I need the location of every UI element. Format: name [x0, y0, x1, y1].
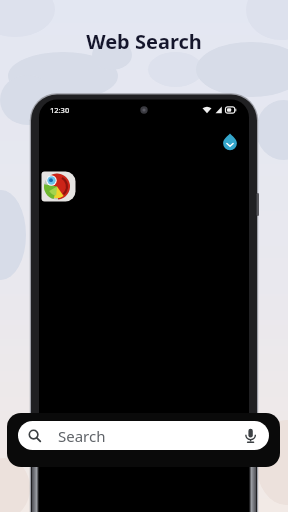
- button[interactable]: Search: [18, 421, 269, 450]
- staticText: Search: [58, 426, 106, 446]
- button[interactable]: Search: [7, 413, 280, 467]
- staticText: 12:30: [50, 105, 70, 115]
- staticText: Web Search: [0, 28, 288, 55]
